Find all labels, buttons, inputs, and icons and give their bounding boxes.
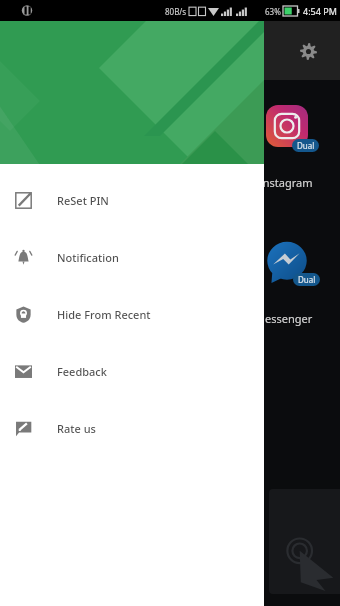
staticText: Notification — [57, 250, 119, 265]
staticText: ReSet PIN — [57, 193, 109, 208]
staticText: 80B/s — [165, 6, 187, 17]
button[interactable]: Rate us — [0, 400, 264, 457]
staticText: 4:54 PM — [303, 5, 337, 17]
staticText: Messenger — [255, 311, 313, 326]
staticText: Feedback — [57, 364, 107, 379]
button[interactable]: Hide From Recent — [0, 286, 264, 343]
staticText: Hide From Recent — [57, 307, 151, 322]
staticText: Dual — [297, 140, 315, 151]
staticText: 63% — [265, 6, 281, 17]
button[interactable]: Feedback — [0, 343, 264, 400]
button[interactable]: Settings — [288, 31, 328, 71]
button[interactable]: ReSet PIN — [0, 172, 264, 229]
staticText: Instagram — [259, 175, 313, 190]
staticText: Dual — [298, 274, 316, 285]
staticText: Rate us — [57, 421, 96, 436]
button[interactable]: Notification — [0, 229, 264, 286]
